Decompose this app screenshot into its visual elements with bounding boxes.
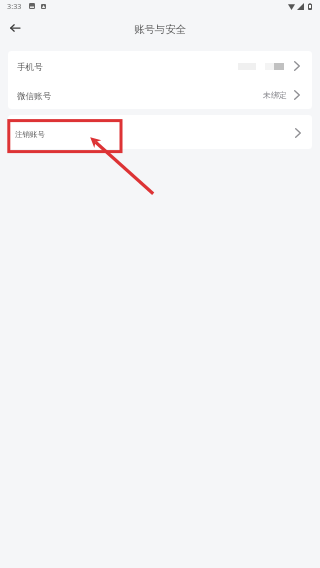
button[interactable]: 微信账号 xyxy=(8,80,312,109)
staticText: 手机号 xyxy=(17,62,43,73)
button[interactable]: 手机号 xyxy=(8,51,312,80)
staticText: 微信账号 xyxy=(17,91,52,102)
staticText: 注销账号 xyxy=(15,130,45,139)
staticText: 未绑定 xyxy=(263,90,287,100)
button[interactable]: 注销账号 xyxy=(8,115,312,149)
staticText: 3:33 xyxy=(7,1,22,11)
button[interactable]: Back xyxy=(3,18,27,42)
staticText: 账号与安全 xyxy=(134,23,186,36)
